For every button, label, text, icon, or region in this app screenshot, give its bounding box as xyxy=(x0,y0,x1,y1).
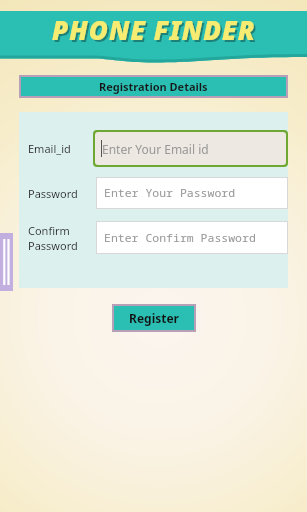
staticText: Enter Your Email id xyxy=(102,141,209,157)
staticText: PHONE FINDER xyxy=(52,12,256,47)
other: Scroll indicator xyxy=(0,233,13,291)
staticText: Password xyxy=(28,238,78,253)
staticText: Registration Details xyxy=(99,79,208,94)
staticText: Confirm xyxy=(28,223,70,238)
button[interactable]: Enter Confirm Password xyxy=(96,221,288,254)
button[interactable]: Registration Details xyxy=(21,77,286,96)
button[interactable]: Register xyxy=(114,306,194,330)
button[interactable]: Enter Your Email id xyxy=(95,132,286,165)
button[interactable]: Enter Your Password xyxy=(96,177,288,209)
staticText: Register xyxy=(129,310,179,326)
staticText: Email_id xyxy=(28,141,71,156)
staticText: PHONE FINDER xyxy=(54,14,258,49)
staticText: Password xyxy=(28,186,78,201)
staticText: Enter Confirm Password xyxy=(104,230,256,246)
staticText: Enter Your Password xyxy=(104,185,236,201)
